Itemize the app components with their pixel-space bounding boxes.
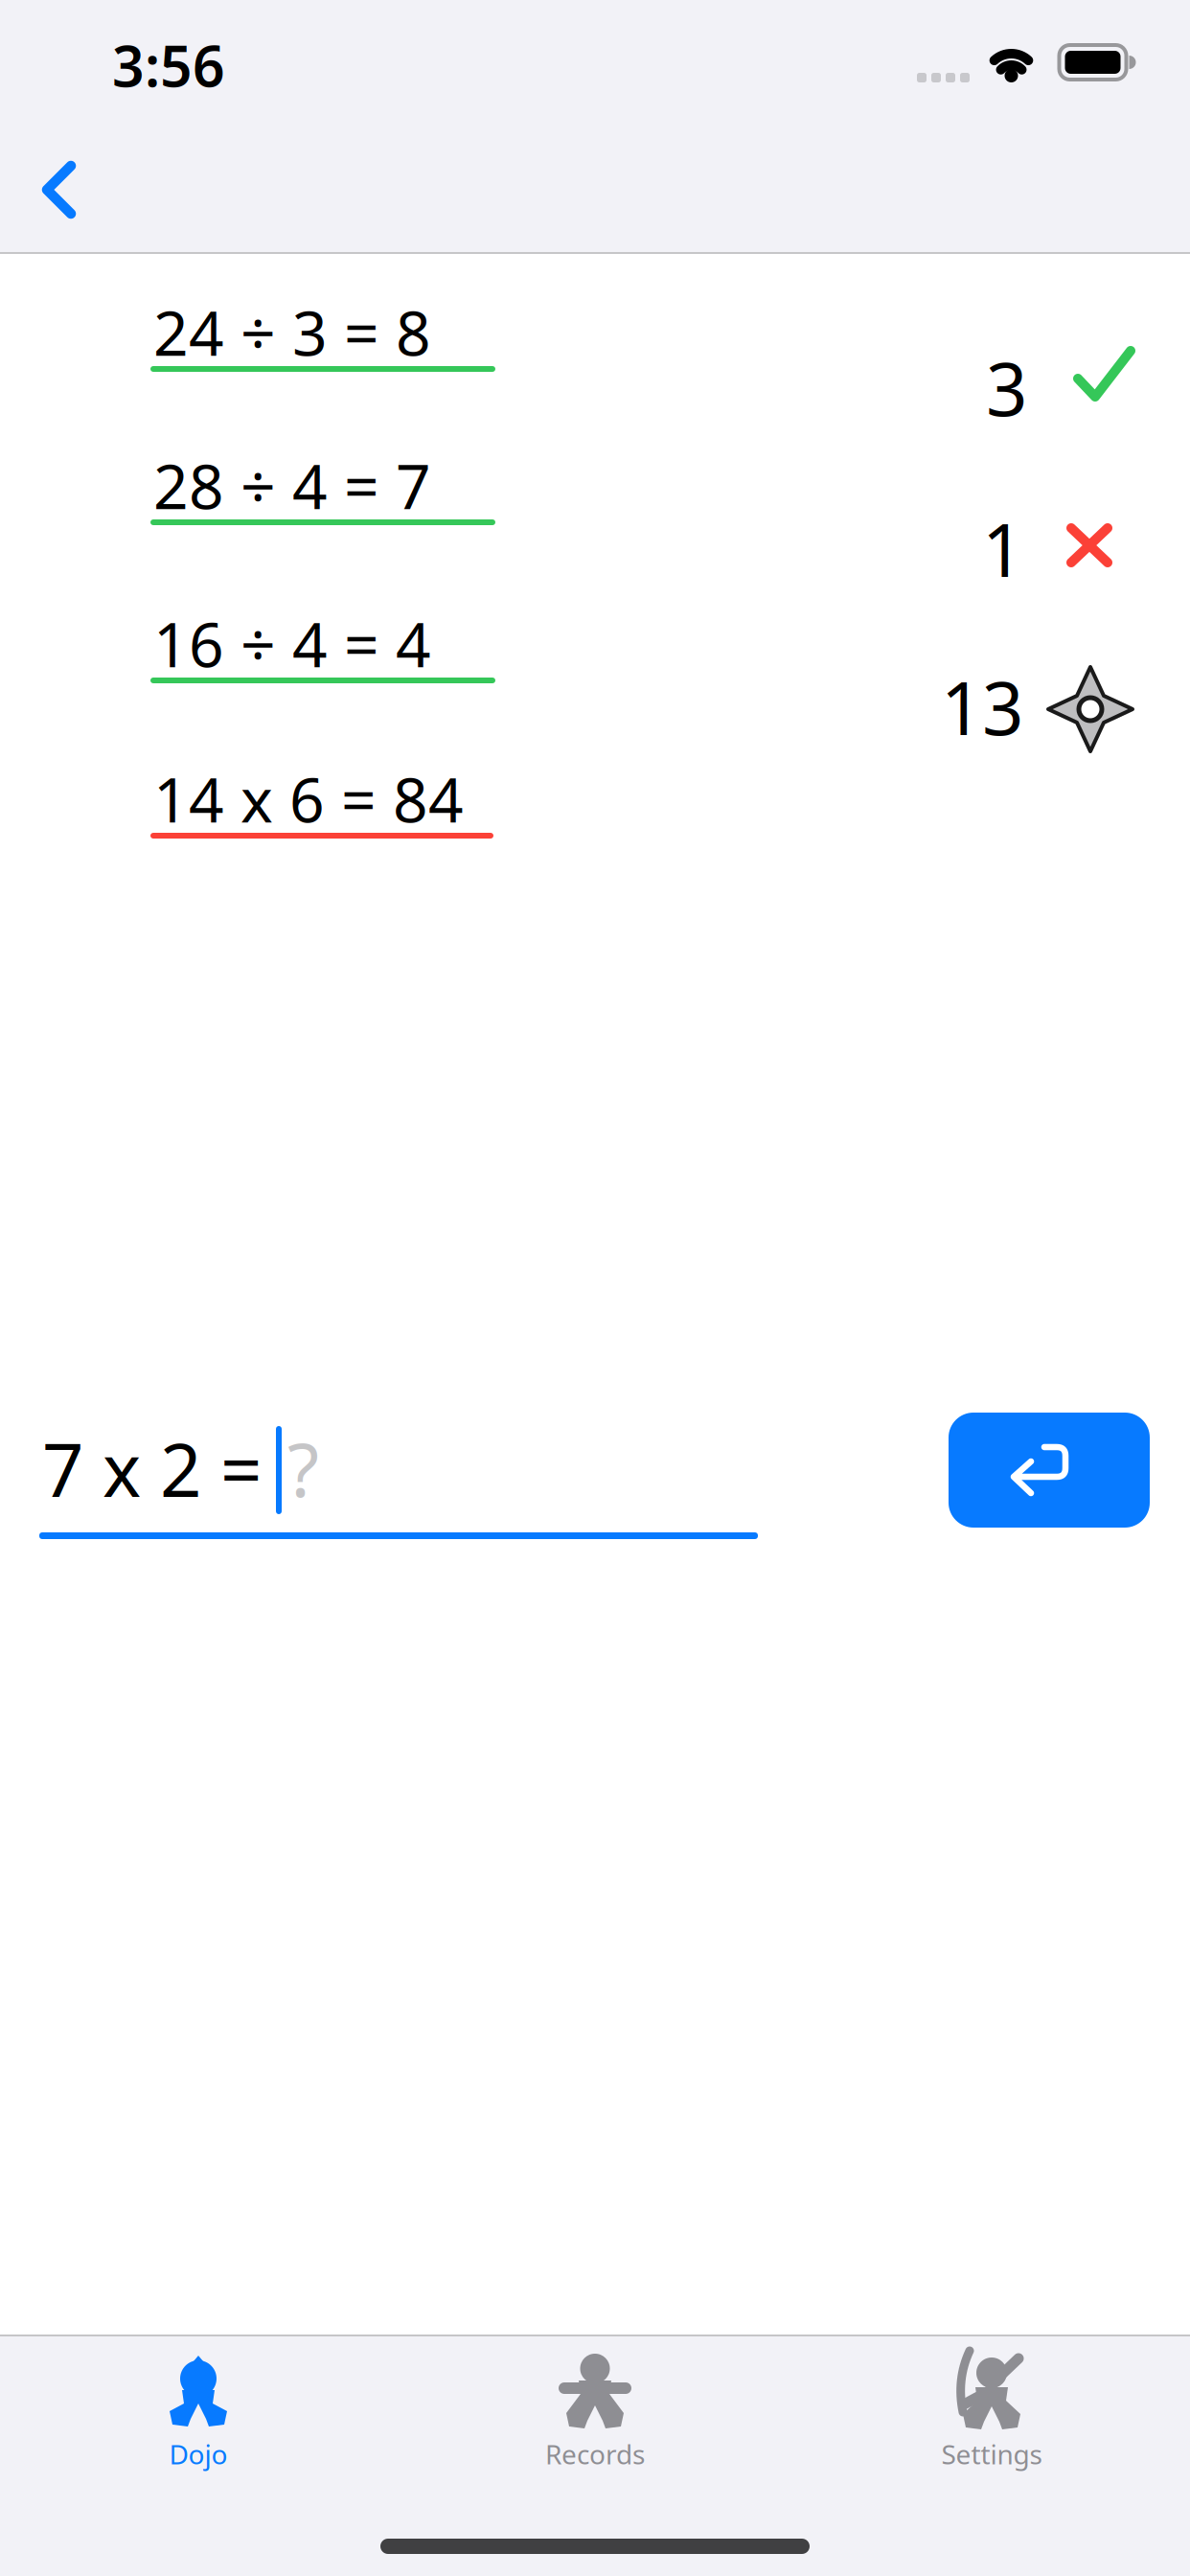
button[interactable]: Records [397,2354,793,2472]
staticText: 1 [982,500,1023,597]
staticText: Settings [941,2436,1042,2472]
staticText: Records [545,2436,645,2472]
staticText: 13 [941,658,1023,755]
button[interactable]: Dojo [0,2356,397,2472]
staticText: 7 x 2 = [42,1420,262,1517]
staticText: 16 ÷ 4 = 4 [153,603,431,684]
staticText: 24 ÷ 3 = 8 [153,291,431,373]
button[interactable]: Settings [793,2349,1190,2472]
button[interactable] [33,152,86,227]
staticText: 28 ÷ 4 = 7 [153,445,431,526]
button[interactable] [949,1413,1150,1528]
staticText: Dojo [169,2436,228,2472]
button[interactable]: 7 x 2 = [39,1413,758,1539]
staticText: 3 [986,339,1027,436]
staticText: 14 x 6 = 84 [153,758,464,839]
staticText: ? [287,1420,319,1517]
staticText: 3:56 [112,28,225,102]
